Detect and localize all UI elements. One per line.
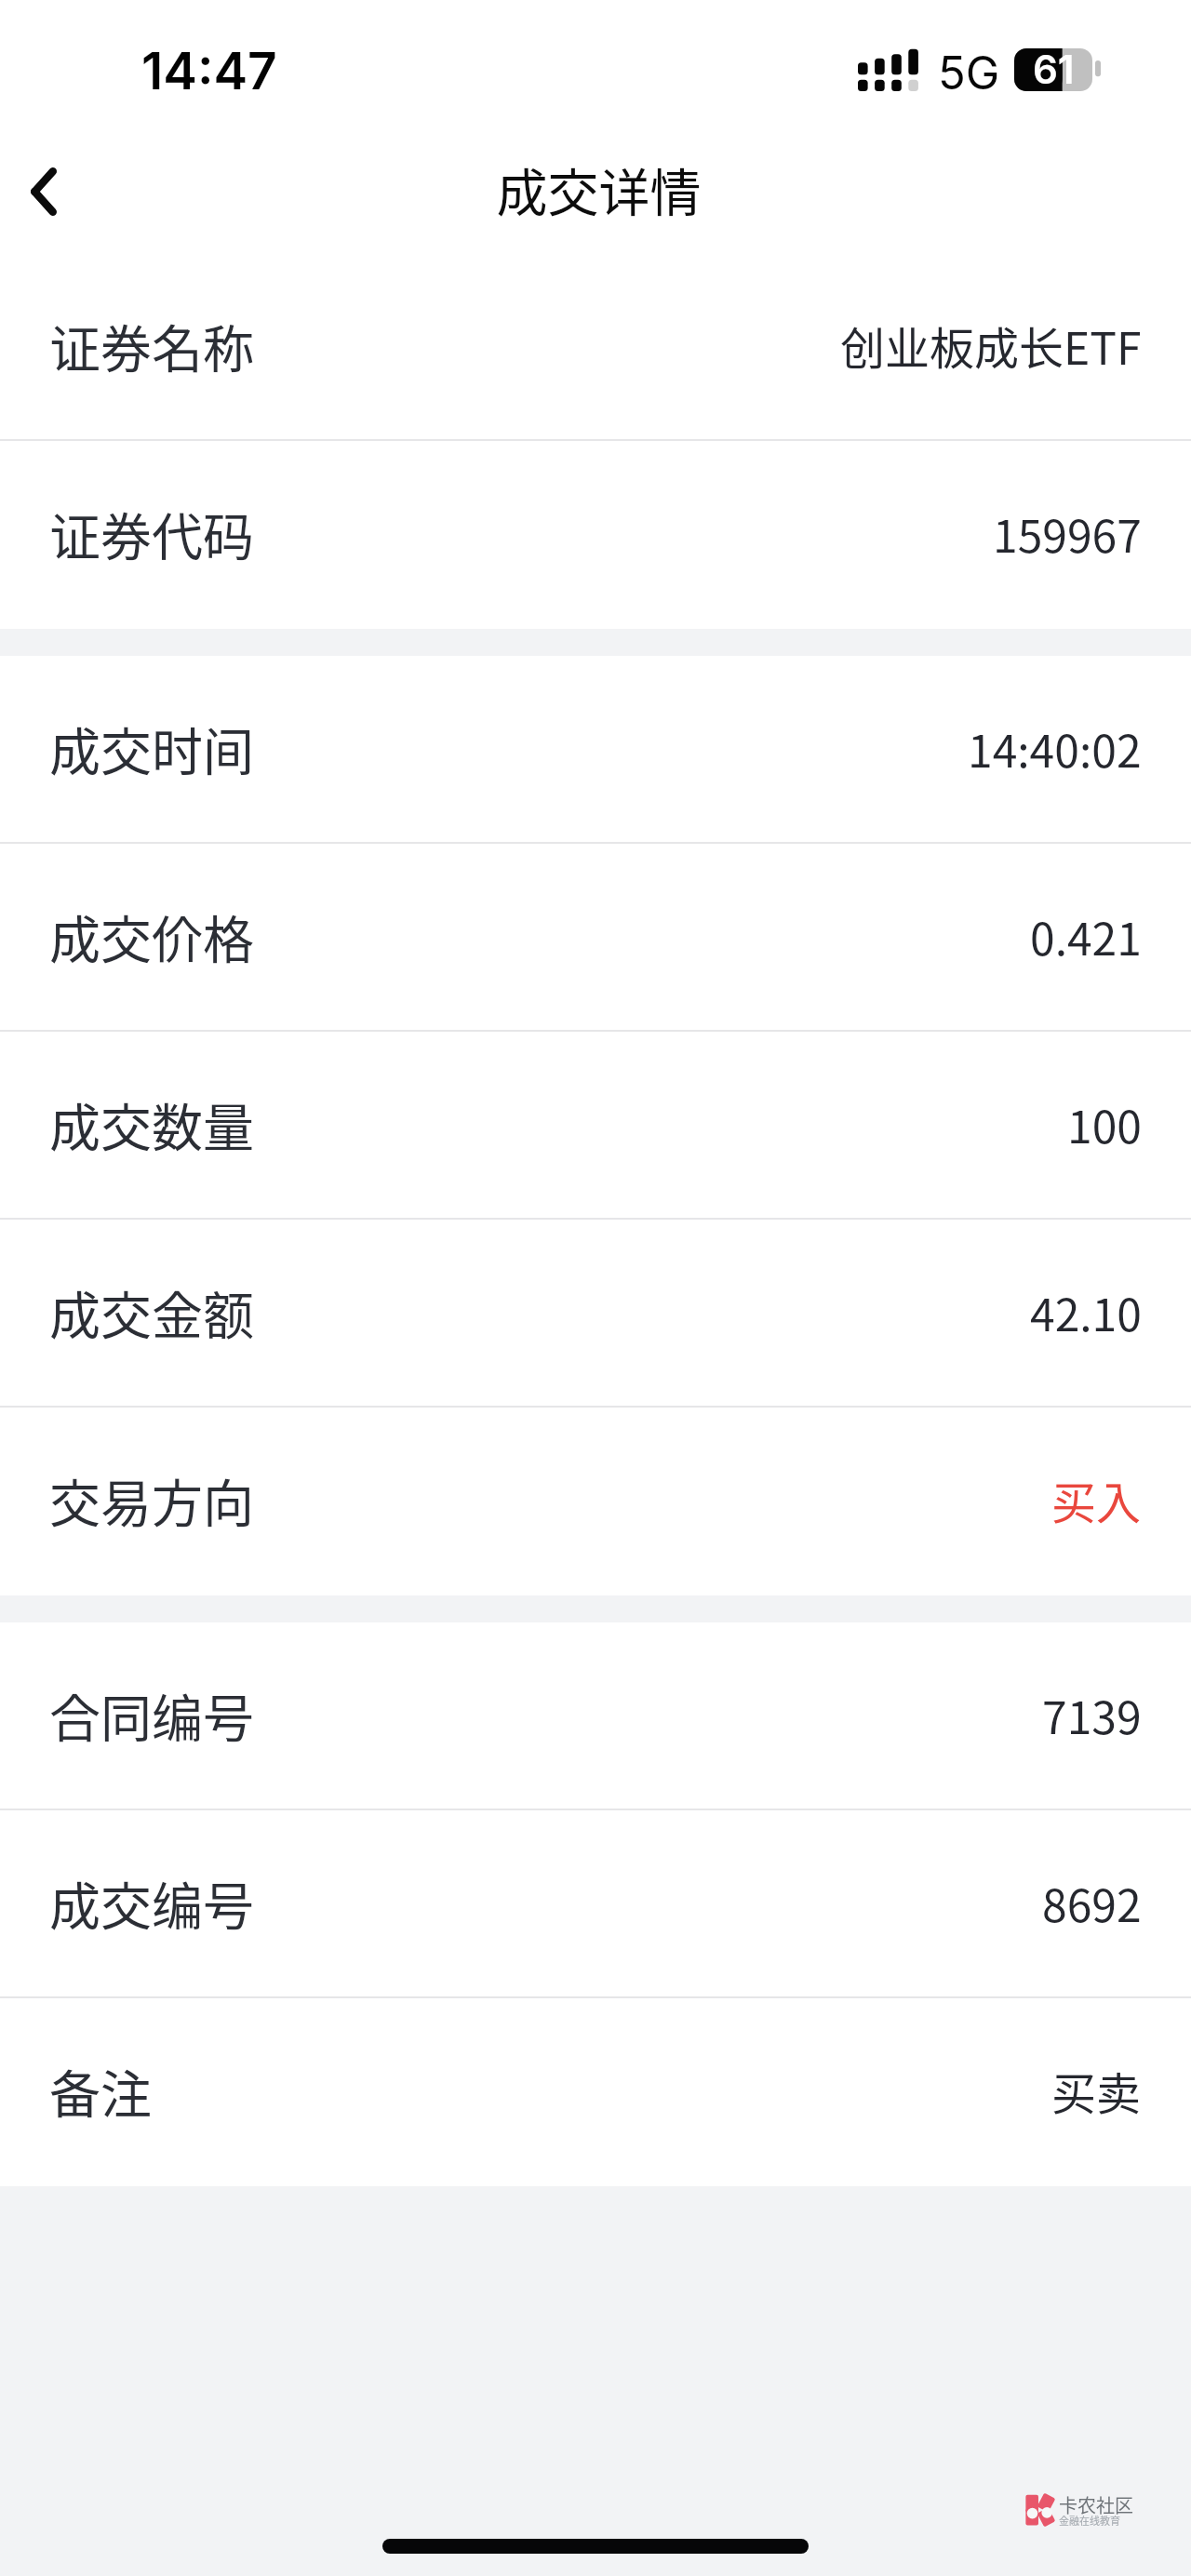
staticText: 成交价格	[49, 899, 255, 973]
staticText: 100	[1067, 1091, 1142, 1156]
staticText: 备注	[49, 2053, 153, 2128]
staticText: 8692	[1042, 1870, 1142, 1935]
staticText: 创业板成长ETF	[840, 313, 1142, 378]
staticText: 成交详情	[496, 152, 702, 226]
button[interactable]: 备注	[0, 1998, 1191, 2186]
staticText: 交易方向	[49, 1462, 255, 1537]
staticText: 7139	[1042, 1682, 1142, 1747]
staticText: 合同编号	[49, 1677, 255, 1752]
button[interactable]: 交易方向	[0, 1408, 1191, 1595]
button[interactable]: 成交价格	[0, 844, 1191, 1032]
staticText: 成交数量	[49, 1087, 255, 1161]
staticText: 金融在线教育	[1059, 2513, 1120, 2528]
staticText: 61	[1033, 46, 1075, 93]
button[interactable]: 成交编号	[0, 1810, 1191, 1998]
staticText: 证券代码	[49, 496, 255, 570]
button[interactable]: Back	[0, 145, 93, 238]
staticText: 14:47	[141, 40, 277, 102]
button[interactable]: 证券名称	[0, 253, 1191, 441]
staticText: 14:40:02	[968, 715, 1142, 781]
button[interactable]: 成交金额	[0, 1220, 1191, 1408]
button[interactable]: 成交数量	[0, 1032, 1191, 1220]
staticText: 0.421	[1030, 903, 1142, 968]
button[interactable]: 成交时间	[0, 656, 1191, 844]
staticText: 证券名称	[49, 308, 255, 382]
staticText: 买卖	[1051, 2058, 1142, 2123]
button[interactable]: 合同编号	[0, 1622, 1191, 1810]
staticText: 159967	[993, 501, 1142, 566]
staticText: 成交金额	[49, 1275, 255, 1349]
button[interactable]: 证券代码	[0, 441, 1191, 629]
staticText: 成交时间	[49, 711, 255, 785]
staticText: 42.10	[1030, 1279, 1142, 1344]
staticText: 卡农社区	[1059, 2491, 1133, 2518]
staticText: 成交编号	[49, 1865, 255, 1940]
staticText: 买入	[1051, 1467, 1142, 1532]
staticText: 5G	[938, 46, 1000, 100]
